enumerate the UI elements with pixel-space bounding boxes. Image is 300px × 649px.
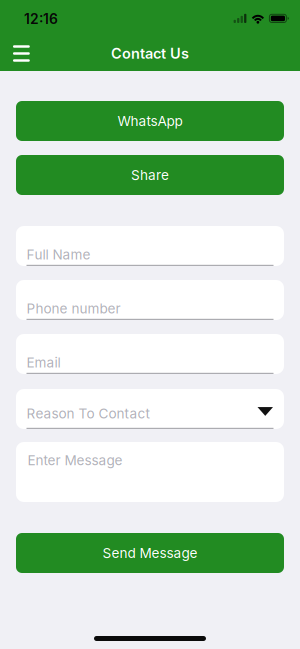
button[interactable]: Menu	[0, 41, 30, 62]
staticText: Full Name	[26, 246, 90, 263]
button[interactable]: Enter Message	[16, 442, 284, 502]
button[interactable]: Phone number	[16, 280, 284, 320]
button[interactable]: Share	[16, 155, 284, 195]
button[interactable]: Email	[16, 334, 284, 374]
staticText: 12:16	[24, 10, 58, 27]
staticText: Phone number	[26, 300, 120, 317]
staticText: Send Message	[102, 545, 197, 561]
staticText: Reason To Contact	[26, 405, 149, 422]
button[interactable]: Reason To Contact	[16, 389, 284, 429]
button[interactable]: Full Name	[16, 226, 284, 266]
staticText: Enter Message	[27, 452, 122, 468]
staticText: Contact Us	[111, 45, 189, 62]
button[interactable]: Send Message	[16, 533, 284, 573]
staticText: Email	[26, 354, 60, 371]
button[interactable]: WhatsApp	[16, 101, 284, 141]
staticText: Share	[131, 167, 169, 183]
staticText: WhatsApp	[117, 113, 182, 129]
